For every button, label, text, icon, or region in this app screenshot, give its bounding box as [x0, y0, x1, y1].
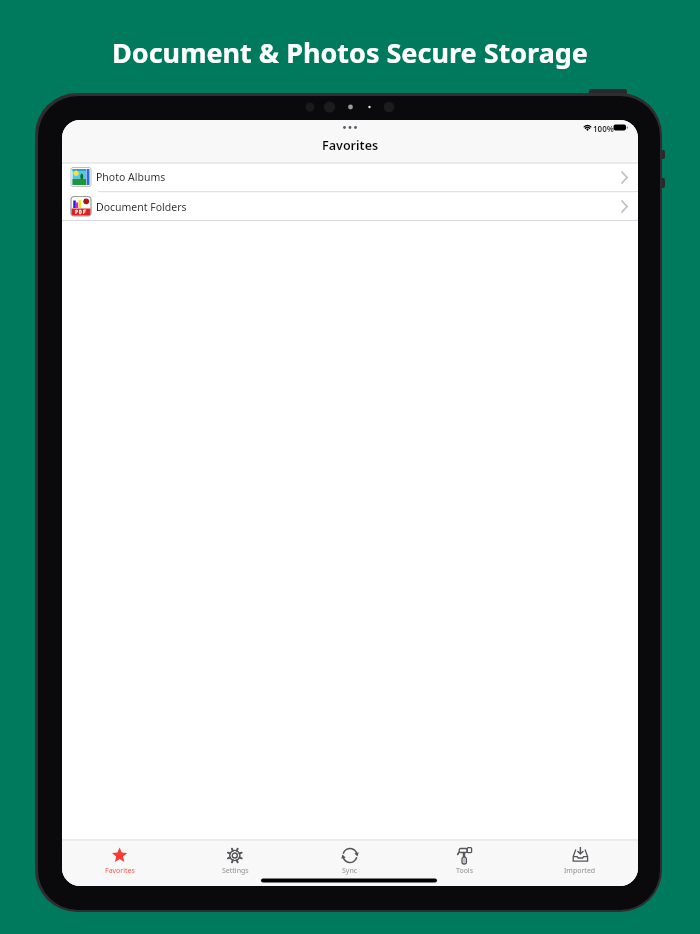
staticText: 100% [593, 123, 614, 134]
staticText: Imported [564, 866, 596, 876]
staticText: Document & Photos Secure Storage [0, 34, 700, 71]
staticText: Settings [222, 866, 249, 876]
staticText: Favorites [322, 137, 379, 154]
staticText: Sync [342, 866, 358, 876]
staticText: Tools [456, 866, 474, 876]
staticText: Photo Albums [96, 170, 166, 184]
staticText: Document Folders [96, 200, 187, 214]
staticText: Favorites [105, 866, 135, 876]
